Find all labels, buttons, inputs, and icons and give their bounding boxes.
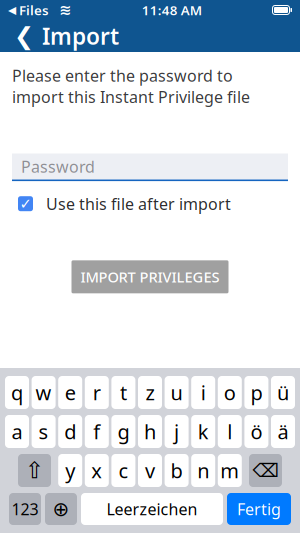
button[interactable]: h	[138, 415, 162, 448]
staticText: ⌫	[252, 460, 278, 481]
button[interactable]: x	[85, 454, 109, 487]
button[interactable]: g	[111, 415, 135, 448]
staticText: ä	[277, 418, 288, 445]
staticText: s	[39, 418, 49, 445]
button[interactable]: Shift	[18, 454, 51, 487]
staticText: Use this file after import	[46, 193, 231, 214]
staticText: Files	[16, 1, 49, 19]
button[interactable]: s	[32, 415, 56, 448]
button[interactable]: i	[191, 376, 215, 409]
staticText: 11:48 AM	[142, 1, 202, 19]
staticText: b	[171, 457, 183, 484]
button[interactable]: Delete	[249, 454, 282, 487]
staticText: e	[65, 379, 76, 406]
button[interactable]: d	[58, 415, 82, 448]
button[interactable]: b	[165, 454, 189, 487]
button[interactable]: t	[111, 376, 135, 409]
staticText: f	[93, 418, 100, 445]
button[interactable]: z	[138, 376, 162, 409]
staticText: v	[145, 457, 155, 484]
staticText: m	[220, 457, 239, 484]
button[interactable]: ✓	[0, 181, 300, 214]
staticText: i	[201, 379, 206, 406]
button[interactable]: Back	[6, 20, 42, 52]
staticText: ❮	[14, 22, 34, 50]
button[interactable]: c	[111, 454, 135, 487]
button[interactable]: ä	[271, 415, 295, 448]
button[interactable]: Switch keyboard	[45, 493, 77, 525]
staticText: p	[250, 379, 262, 406]
button[interactable]: q	[5, 376, 29, 409]
staticText: Leerzeichen	[106, 498, 197, 520]
staticText: u	[171, 379, 183, 406]
staticText: w	[36, 379, 52, 406]
staticText: ⊕	[52, 498, 69, 520]
button[interactable]: Fertig	[227, 493, 291, 525]
staticText: ✓	[19, 195, 31, 212]
button[interactable]: Leerzeichen	[81, 493, 223, 525]
staticText: 123	[11, 498, 38, 520]
staticText: g	[117, 418, 129, 445]
staticText: o	[224, 379, 236, 406]
staticText: z	[145, 379, 154, 406]
staticText: y	[65, 457, 75, 484]
staticText: ≋	[49, 2, 71, 18]
staticText: IMPORT PRIVILEGES	[80, 267, 219, 287]
button[interactable]: IMPORT PRIVILEGES	[71, 260, 228, 293]
staticText: j	[174, 418, 179, 445]
button[interactable]: u	[165, 376, 189, 409]
staticText: ü	[277, 379, 289, 406]
button[interactable]: l	[218, 415, 242, 448]
button[interactable]: e	[58, 376, 82, 409]
button[interactable]: y	[58, 454, 82, 487]
button[interactable]: a	[5, 415, 29, 448]
button[interactable]: r	[85, 376, 109, 409]
button[interactable]: 123	[9, 493, 41, 525]
staticText: d	[64, 418, 76, 445]
staticText: c	[118, 457, 128, 484]
button[interactable]: n	[191, 454, 215, 487]
staticText: h	[144, 418, 156, 445]
button[interactable]: m	[218, 454, 242, 487]
button[interactable]: f	[85, 415, 109, 448]
staticText: Fertig	[237, 498, 281, 520]
staticText: k	[198, 418, 209, 445]
button[interactable]: p	[244, 376, 268, 409]
button[interactable]: ö	[244, 415, 268, 448]
staticText: r	[93, 379, 101, 406]
staticText: q	[11, 379, 23, 406]
button[interactable]: o	[218, 376, 242, 409]
button[interactable]: j	[165, 415, 189, 448]
staticText: l	[227, 418, 232, 445]
staticText: x	[91, 457, 102, 484]
button[interactable]: ü	[271, 376, 295, 409]
staticText: a	[11, 418, 22, 445]
button[interactable]: w	[32, 376, 56, 409]
staticText: Please enter the password to import this…	[12, 65, 250, 107]
staticText: ◀	[8, 4, 16, 16]
staticText: ö	[250, 418, 262, 445]
button[interactable]: k	[191, 415, 215, 448]
staticText: ⇧	[25, 458, 44, 483]
staticText: n	[197, 457, 209, 484]
staticText: Password	[21, 156, 95, 177]
staticText: Import	[42, 21, 119, 51]
staticText: t	[120, 379, 127, 406]
button[interactable]: v	[138, 454, 162, 487]
